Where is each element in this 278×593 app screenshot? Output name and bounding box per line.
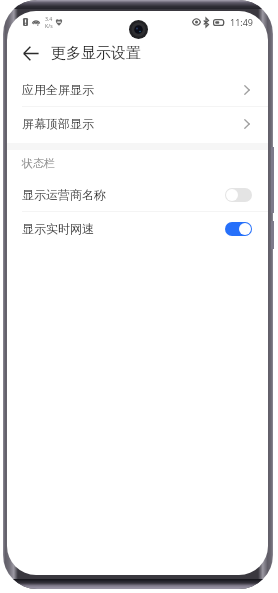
staticText: 屏幕顶部显示 [22,116,94,131]
staticText: 11:49 [230,16,254,28]
staticText: 显示运营商名称 [22,187,106,202]
staticText: K/s [45,22,53,29]
button[interactable]: 屏幕顶部显示 [7,107,268,140]
button[interactable]: 应用全屏显示 [7,73,268,106]
button[interactable]: 显示运营商名称 [7,178,268,211]
staticText: 应用全屏显示 [22,82,94,97]
staticText: 3.4 [45,15,53,22]
button[interactable]: 显示实时网速 [7,212,268,245]
staticText: 更多显示设置 [51,44,141,63]
button[interactable]: Back [7,35,47,71]
staticText: 显示实时网速 [22,221,94,236]
staticText: 状态栏 [22,156,55,170]
